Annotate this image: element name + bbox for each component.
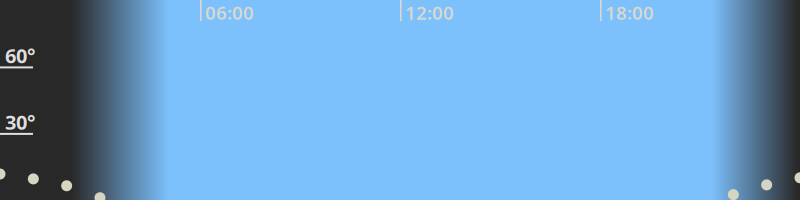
staticText: 12:00 <box>405 0 454 25</box>
staticText: 60° <box>5 42 35 69</box>
staticText: 18:00 <box>605 0 654 25</box>
staticText: 06:00 <box>205 0 254 25</box>
staticText: 30° <box>5 109 35 135</box>
